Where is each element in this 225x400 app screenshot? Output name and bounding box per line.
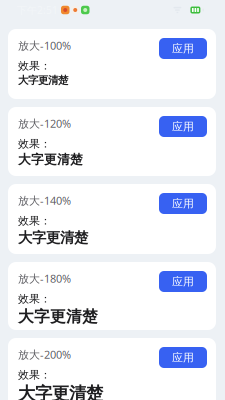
staticText: 效果： bbox=[18, 59, 51, 73]
staticText: 放大-140% bbox=[18, 193, 71, 208]
button[interactable]: 应用 bbox=[159, 347, 207, 368]
button[interactable]: 应用 bbox=[159, 38, 207, 59]
staticText: 大字更清楚 bbox=[18, 152, 83, 168]
button[interactable]: 应用 bbox=[159, 116, 207, 137]
staticText: 放大-180% bbox=[18, 271, 71, 286]
button[interactable]: 应用 bbox=[159, 271, 207, 292]
staticText: 大字更清楚 bbox=[18, 229, 88, 247]
staticText: 大字更清楚 bbox=[18, 383, 103, 400]
staticText: 应用 bbox=[172, 120, 194, 133]
staticText: 大字更清楚 bbox=[18, 74, 68, 87]
staticText: 放大-100% bbox=[18, 38, 71, 53]
staticText: 效果： bbox=[18, 292, 51, 306]
staticText: 应用 bbox=[172, 351, 194, 364]
staticText: 应用 bbox=[172, 275, 194, 288]
button[interactable]: 应用 bbox=[159, 193, 207, 214]
staticText: 效果： bbox=[18, 368, 51, 382]
staticText: 效果： bbox=[18, 214, 51, 228]
staticText: 放大-120% bbox=[18, 116, 71, 131]
staticText: 应用 bbox=[172, 197, 194, 210]
staticText: 放大-200% bbox=[18, 347, 71, 362]
staticText: 效果： bbox=[18, 137, 51, 151]
staticText: 大字更清楚 bbox=[18, 307, 98, 326]
staticText: 应用 bbox=[172, 42, 194, 55]
